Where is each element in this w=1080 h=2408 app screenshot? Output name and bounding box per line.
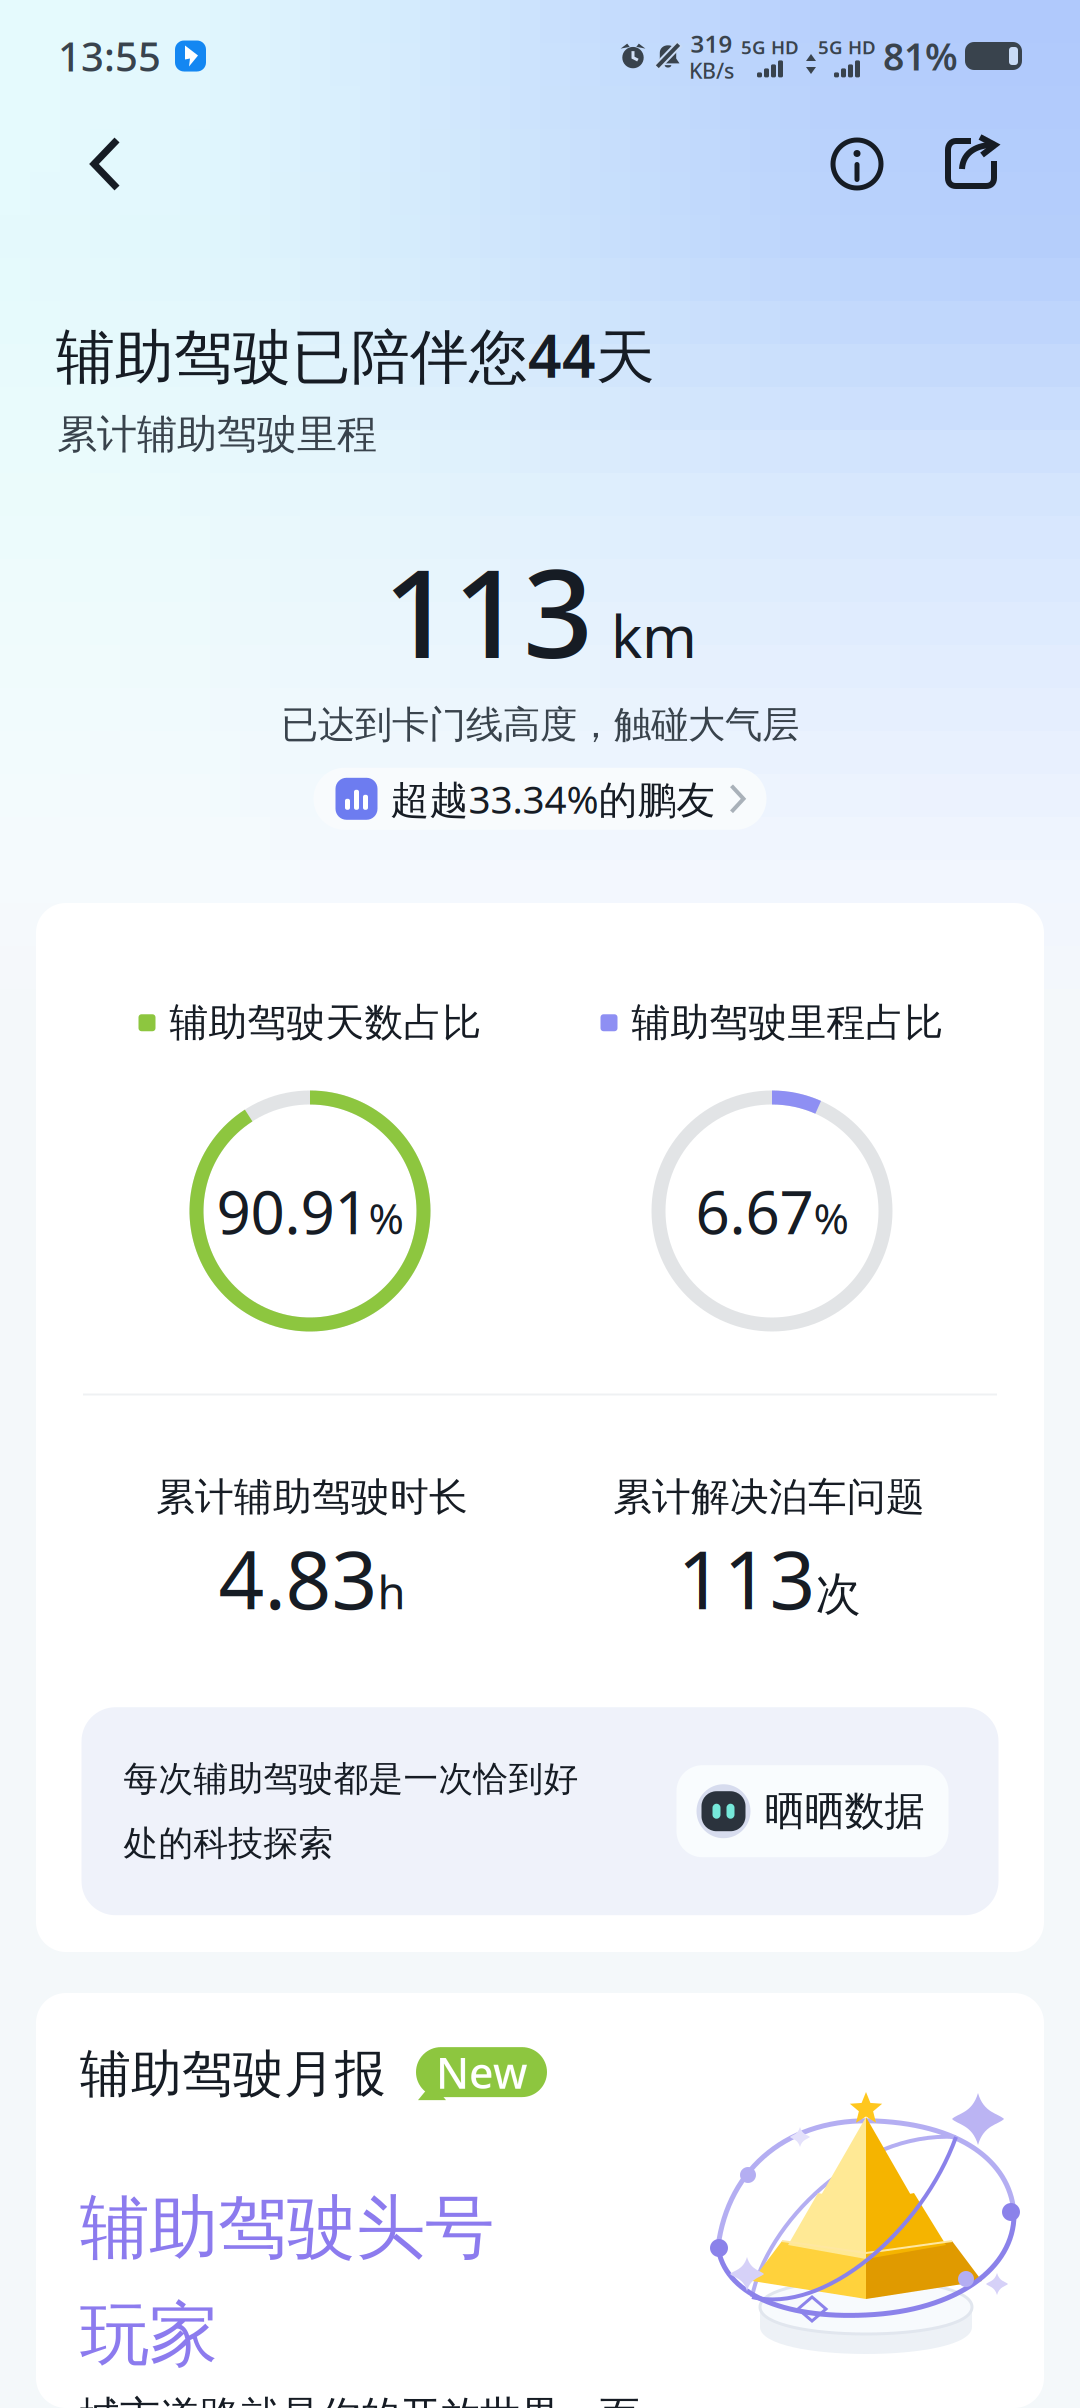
staticText: 辅助驾驶月报: [80, 2043, 386, 2105]
staticText: 累计解决泊车问题: [613, 1473, 925, 1521]
staticText: %: [368, 1189, 403, 1246]
staticText: 4.83: [218, 1525, 377, 1631]
staticText: 81%: [883, 31, 958, 81]
button[interactable]: 说明: [814, 121, 900, 207]
staticText: 113: [383, 529, 593, 692]
staticText: 319: [690, 27, 732, 59]
staticText: New: [436, 2044, 527, 2100]
staticText: 晒晒数据: [764, 1787, 924, 1836]
staticText: 城市道路就是你的开放世界，而: [80, 2392, 640, 2408]
button[interactable]: 返回: [63, 121, 149, 207]
button[interactable]: 晒晒数据: [676, 1765, 948, 1857]
staticText: 辅助驾驶里程占比: [631, 999, 943, 1046]
staticText: 处的科技探索: [123, 1822, 333, 1865]
staticText: %: [813, 1189, 848, 1246]
staticText: h: [377, 1561, 405, 1622]
staticText: 5G HD: [741, 35, 799, 59]
staticText: 玩家: [80, 2292, 218, 2378]
staticText: 辅助驾驶已陪伴您44天: [56, 316, 655, 394]
staticText: km: [611, 596, 697, 674]
staticText: 6.67: [695, 1171, 813, 1251]
staticText: 90.91: [216, 1171, 368, 1251]
staticText: 累计辅助驾驶里程: [57, 410, 377, 459]
staticText: 13:55: [58, 29, 161, 82]
staticText: KB/s: [689, 56, 734, 85]
staticText: 超越33.34%的鹏友: [390, 773, 715, 824]
staticText: 113: [677, 1525, 815, 1631]
button[interactable]: 分享: [928, 121, 1014, 207]
staticText: 累计辅助驾驶时长: [156, 1473, 468, 1521]
staticText: 次: [815, 1566, 860, 1622]
staticText: 辅助驾驶天数占比: [169, 999, 481, 1046]
staticText: 辅助驾驶头号: [80, 2185, 494, 2270]
staticText: 5G HD: [818, 35, 876, 59]
button[interactable]: 超越33.34%的鹏友: [313, 768, 766, 830]
staticText: 已达到卡门线高度，触碰大气层: [281, 702, 799, 748]
staticText: 每次辅助驾驶都是一次恰到好: [123, 1758, 578, 1800]
